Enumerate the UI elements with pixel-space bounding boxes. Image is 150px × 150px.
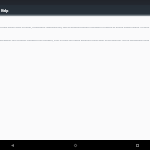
button[interactable]: Home bbox=[63, 140, 88, 150]
staticText: Lorem ipsum dolor sit amet, consectetur … bbox=[0, 25, 150, 28]
staticText: Help bbox=[1, 9, 9, 13]
staticText: Excepteur sint occaecat cupidatat non pr… bbox=[0, 38, 150, 41]
button[interactable]: Back bbox=[0, 140, 25, 150]
button[interactable]: Recent apps bbox=[125, 140, 150, 150]
